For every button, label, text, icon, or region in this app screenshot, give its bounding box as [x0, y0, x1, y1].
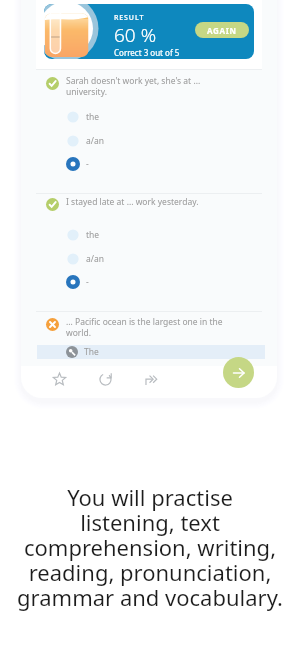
- button[interactable]: -: [46, 153, 255, 175]
- staticText: You will practise listening, text compre…: [4, 482, 296, 612]
- staticText: RESULT: [114, 13, 145, 23]
- staticText: The: [84, 346, 99, 358]
- button[interactable]: a/an: [46, 130, 255, 152]
- staticText: AGAIN: [207, 25, 237, 36]
- button[interactable]: AGAIN: [195, 22, 249, 38]
- button[interactable]: Refresh: [91, 365, 119, 393]
- button[interactable]: the: [46, 106, 255, 128]
- staticText: a/an: [86, 135, 104, 147]
- button[interactable]: a/an: [46, 248, 255, 270]
- button[interactable]: Next: [223, 357, 254, 388]
- staticText: -: [86, 276, 89, 288]
- staticText: I stayed late at ... work yesterday.: [66, 196, 238, 208]
- button[interactable]: Skip: [137, 365, 165, 393]
- staticText: ... Pacific ocean is the largest one in …: [66, 316, 238, 338]
- staticText: a/an: [86, 253, 104, 265]
- staticText: Correct 3 out of 5: [114, 47, 180, 58]
- staticText: Sarah doesn't work yet, she's at ... uni…: [66, 75, 238, 97]
- staticText: 60 %: [114, 22, 157, 48]
- staticText: -: [86, 158, 89, 170]
- staticText: the: [86, 111, 100, 123]
- button[interactable]: -: [46, 271, 255, 293]
- button[interactable]: the: [46, 224, 255, 246]
- button[interactable]: Favourite: [45, 365, 73, 393]
- staticText: the: [86, 229, 100, 241]
- button[interactable]: The: [37, 345, 265, 359]
